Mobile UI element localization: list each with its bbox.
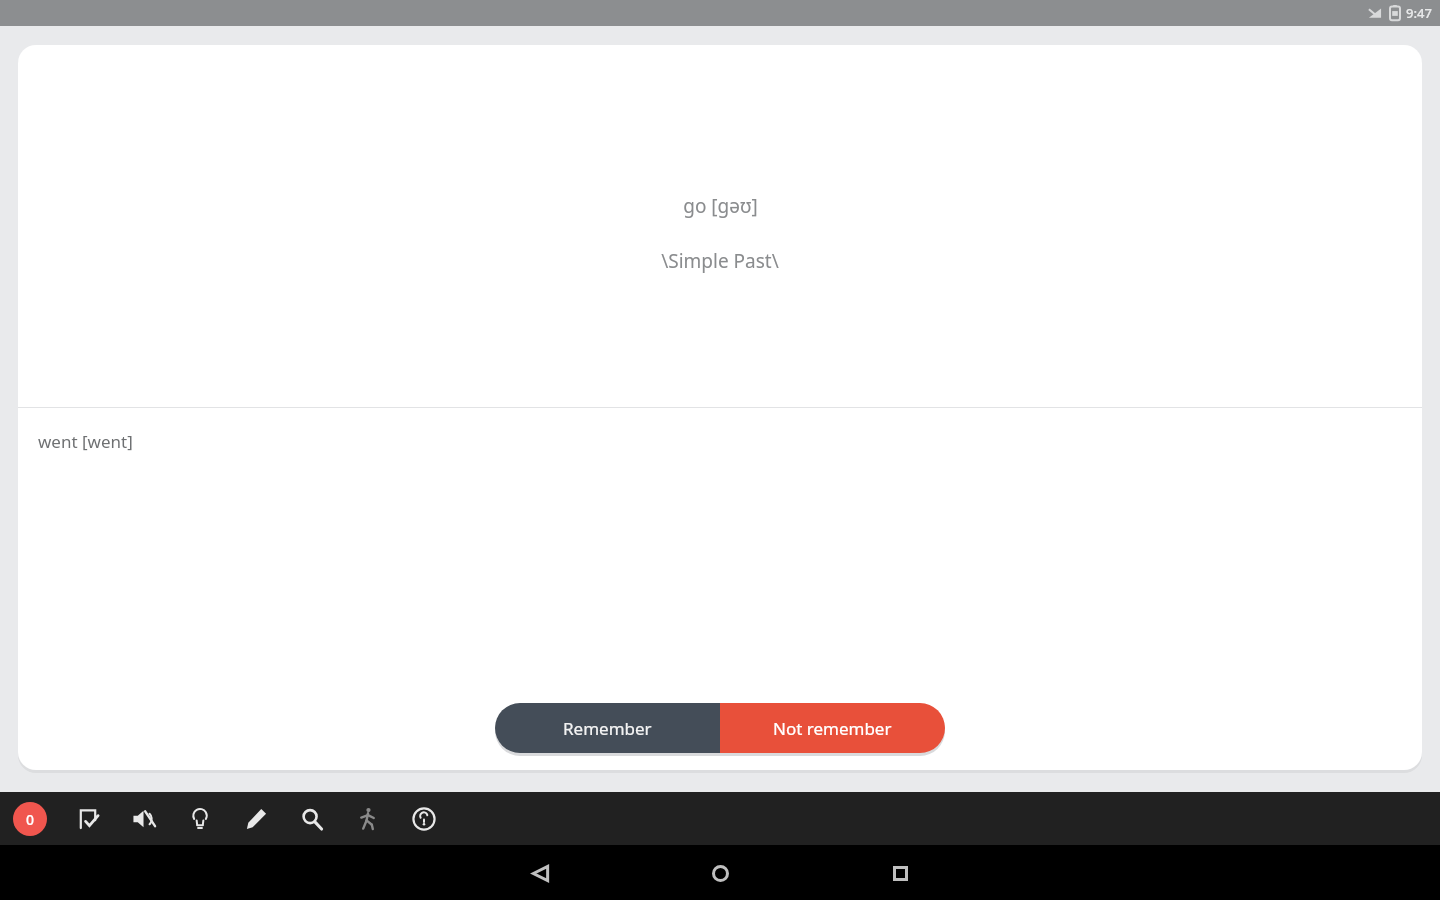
button[interactable]: Back <box>520 853 560 893</box>
button[interactable]: Home <box>700 853 740 893</box>
staticText: Not remember <box>773 717 892 740</box>
staticText: go [gəʊ] <box>683 193 758 219</box>
button[interactable]: Edit <box>237 800 275 838</box>
button[interactable]: Hint <box>181 800 219 838</box>
staticText: 0 <box>26 810 35 829</box>
staticText: Remember <box>563 717 652 740</box>
staticText: 9:47 <box>1406 4 1432 22</box>
button[interactable]: Mark learned <box>69 800 107 838</box>
button[interactable]: Walk mode <box>349 800 387 838</box>
button[interactable]: Recent apps <box>880 853 920 893</box>
button[interactable]: Remember <box>495 703 720 753</box>
button[interactable]: Help <box>405 800 443 838</box>
staticText: went [went] <box>38 430 133 453</box>
button[interactable]: Not remember <box>720 703 945 753</box>
staticText: \Simple Past\ <box>661 248 779 274</box>
button[interactable]: Search <box>293 800 331 838</box>
button[interactable]: Mute sound <box>125 800 163 838</box>
button[interactable]: Card count <box>13 802 47 836</box>
